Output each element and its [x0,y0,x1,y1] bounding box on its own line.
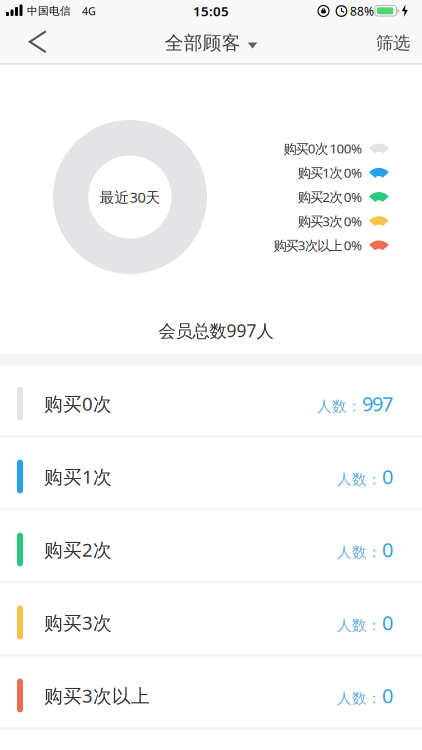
staticText: 中国电信 [27,4,71,17]
staticText: 人数： [337,543,382,561]
staticText: 购买3次 0% [298,212,362,230]
staticText: 0 [382,609,393,636]
staticText: 0 [382,463,393,490]
staticText: 最近30天 [99,187,160,207]
staticText: 购买3次以上 0% [273,236,362,254]
staticText: 4G [82,4,96,18]
staticText: 会员总数997人 [158,319,273,342]
staticText: 购买1次 0% [298,164,362,181]
staticText: 0 [382,536,393,563]
staticText: 人数： [337,689,382,707]
staticText: 筛选 [376,32,410,54]
staticText: 购买1次 [44,464,112,489]
staticText: 购买2次 [44,537,112,562]
staticText: 88% [350,3,374,19]
staticText: 购买3次以上 [44,683,150,708]
staticText: 购买0次 100% [283,139,362,157]
staticText: 0 [382,682,393,709]
staticText: 购买0次 [44,391,112,416]
staticText: 全部顾客 [165,31,241,54]
staticText: 购买3次 [44,610,112,635]
staticText: 购买2次 0% [298,188,362,206]
staticText: 997 [362,390,393,417]
staticText: 人数： [337,616,382,634]
staticText: 15:05 [193,2,229,20]
staticText: 人数： [337,470,382,488]
staticText: 人数： [317,397,362,415]
